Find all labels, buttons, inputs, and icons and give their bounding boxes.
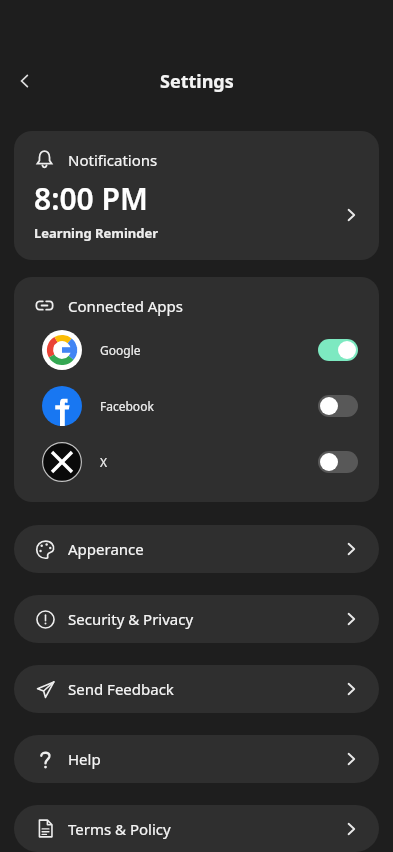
button[interactable]: Terms & Policy xyxy=(14,805,379,852)
button[interactable]: Notifications xyxy=(14,131,379,260)
button[interactable]: Toggle X xyxy=(318,451,358,473)
staticText: Settings xyxy=(160,69,234,94)
button[interactable]: Security & Privacy xyxy=(14,595,379,643)
button[interactable]: Help xyxy=(14,735,379,783)
button[interactable]: Toggle Facebook xyxy=(318,395,358,417)
staticText: Help xyxy=(68,749,341,769)
button[interactable]: Apperance xyxy=(14,525,379,573)
button[interactable]: Toggle Google xyxy=(318,339,358,361)
button[interactable]: Facebook xyxy=(14,378,379,434)
staticText: Security & Privacy xyxy=(68,609,341,629)
button[interactable]: Send Feedback xyxy=(14,665,379,713)
button[interactable]: Google xyxy=(14,322,379,378)
staticText: Learning Reminder xyxy=(34,224,159,242)
staticText: Send Feedback xyxy=(68,679,341,699)
button[interactable]: Back xyxy=(8,64,42,98)
staticText: Connected Apps xyxy=(68,296,183,316)
staticText: 8:00 PM xyxy=(34,178,148,219)
staticText: Notifications xyxy=(68,150,158,170)
staticText: Facebook xyxy=(100,398,318,414)
staticText: Terms & Policy xyxy=(68,819,341,839)
button[interactable]: X xyxy=(14,434,379,490)
staticText: X xyxy=(100,454,318,470)
staticText: Google xyxy=(100,342,318,358)
staticText: Apperance xyxy=(68,539,341,559)
